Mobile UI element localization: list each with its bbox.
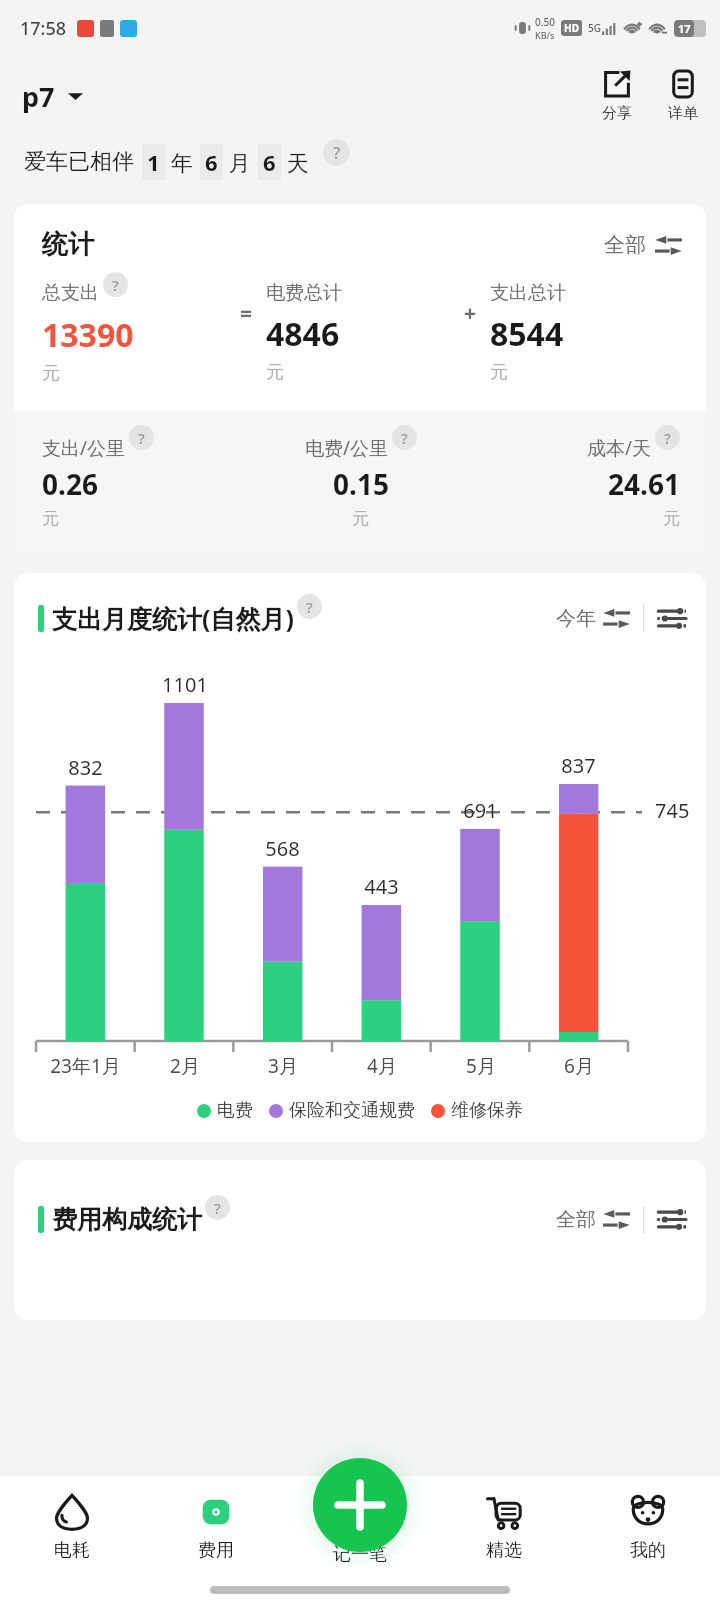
other: 电耗: [54, 1494, 90, 1530]
staticText: 745: [655, 797, 690, 824]
staticText: 6: [263, 147, 276, 177]
staticText: 记一笔: [333, 1543, 387, 1566]
staticText: 支出总计: [490, 281, 566, 305]
other: 筛选: [657, 607, 686, 630]
staticText: =: [240, 299, 253, 328]
button[interactable]: 记一笔: [313, 1458, 407, 1552]
staticText: 元: [266, 361, 284, 384]
button[interactable]: 全部: [556, 1207, 630, 1232]
button[interactable]: 详单: [664, 67, 702, 125]
staticText: 详单: [668, 104, 698, 123]
staticText: 年: [165, 147, 193, 177]
staticText: ?: [306, 597, 313, 617]
staticText: +: [464, 299, 477, 328]
staticText: 0.15: [333, 465, 389, 503]
button[interactable]: 爱车已相伴: [24, 136, 720, 188]
staticText: 17:58: [20, 16, 67, 41]
staticText: 837: [561, 752, 596, 779]
button[interactable]: 今年: [556, 606, 630, 631]
other: 详单: [668, 69, 698, 99]
staticText: p7: [22, 78, 55, 115]
button[interactable]: 筛选: [657, 607, 686, 630]
staticText: 24.61: [608, 465, 680, 503]
staticText: HD: [564, 21, 579, 35]
staticText: 2月: [170, 1053, 200, 1079]
staticText: 元: [352, 508, 369, 529]
staticText: ?: [333, 142, 341, 164]
button[interactable]: 分享: [598, 67, 636, 125]
staticText: 电费/公里: [305, 435, 389, 461]
staticText: 13390: [42, 313, 134, 357]
staticText: 天: [281, 147, 309, 177]
other: 排序: [603, 1209, 630, 1230]
button[interactable]: 说明: [129, 425, 154, 450]
staticText: 6: [205, 147, 218, 177]
button[interactable]: 全部: [604, 232, 682, 258]
staticText: 4月: [367, 1053, 397, 1079]
staticText: 爱车已相伴: [24, 148, 134, 176]
button[interactable]: 说明: [323, 139, 350, 166]
staticText: 支出月度统计(自然月): [52, 601, 294, 635]
staticText: 维修保养: [451, 1099, 523, 1122]
staticText: ?: [138, 428, 145, 448]
staticText: KB/s: [535, 29, 555, 41]
staticText: 0.50: [535, 15, 555, 29]
staticText: 元: [663, 508, 680, 529]
staticText: 568: [265, 835, 300, 862]
other: 排序: [655, 235, 682, 256]
staticText: ?: [112, 275, 119, 295]
staticText: 全部: [604, 232, 646, 258]
staticText: 6月: [564, 1053, 594, 1079]
staticText: 23年1月: [50, 1053, 121, 1079]
other: 分享: [602, 69, 632, 99]
staticText: 443: [364, 873, 399, 900]
staticText: 4846: [266, 312, 340, 356]
staticText: 元: [42, 508, 59, 529]
staticText: 我的: [630, 1539, 666, 1562]
staticText: 保险和交通规费: [289, 1099, 415, 1122]
staticText: 电费总计: [266, 281, 342, 305]
staticText: 支出/公里: [42, 435, 126, 461]
staticText: 1101: [162, 671, 208, 698]
button[interactable]: 说明: [392, 425, 417, 450]
staticText: 元: [42, 362, 60, 385]
button[interactable]: 说明: [205, 1195, 230, 1220]
staticText: 691: [463, 797, 498, 824]
staticText: 5月: [466, 1053, 496, 1079]
staticText: ?: [214, 1198, 221, 1218]
other: 我的: [630, 1494, 666, 1530]
staticText: 月: [223, 147, 251, 177]
staticText: 全部: [556, 1207, 596, 1232]
other: 排序: [603, 608, 630, 629]
button[interactable]: 说明: [297, 594, 322, 619]
staticText: 3月: [268, 1053, 298, 1079]
button[interactable]: 说明: [655, 425, 680, 450]
button[interactable]: 费用: [144, 1476, 288, 1562]
staticText: 8544: [490, 312, 564, 356]
button[interactable]: 电耗: [0, 1476, 144, 1562]
button[interactable]: 筛选: [657, 1208, 686, 1231]
staticText: 电耗: [54, 1539, 90, 1562]
staticText: 5G: [588, 21, 601, 35]
staticText: 总支出: [42, 281, 99, 305]
staticText: 1: [147, 147, 160, 177]
button[interactable]: p7: [22, 78, 83, 115]
other: 筛选: [657, 1208, 686, 1231]
staticText: 17: [678, 21, 691, 36]
staticText: 0.26: [42, 465, 98, 503]
staticText: 分享: [602, 104, 632, 123]
staticText: 成本/天: [587, 435, 652, 461]
button[interactable]: 记一笔: [333, 1543, 387, 1566]
staticText: 今年: [556, 606, 596, 631]
other: 费用: [198, 1494, 234, 1530]
other: 精选: [486, 1494, 522, 1530]
button[interactable]: 精选: [432, 1476, 576, 1562]
button[interactable]: 我的: [576, 1476, 720, 1562]
staticText: ?: [664, 428, 671, 448]
staticText: 精选: [486, 1539, 522, 1562]
staticText: 电费: [217, 1099, 253, 1122]
staticText: 832: [68, 754, 103, 781]
button[interactable]: 说明: [103, 272, 128, 297]
staticText: 费用构成统计: [52, 1204, 202, 1235]
staticText: 元: [490, 361, 508, 384]
